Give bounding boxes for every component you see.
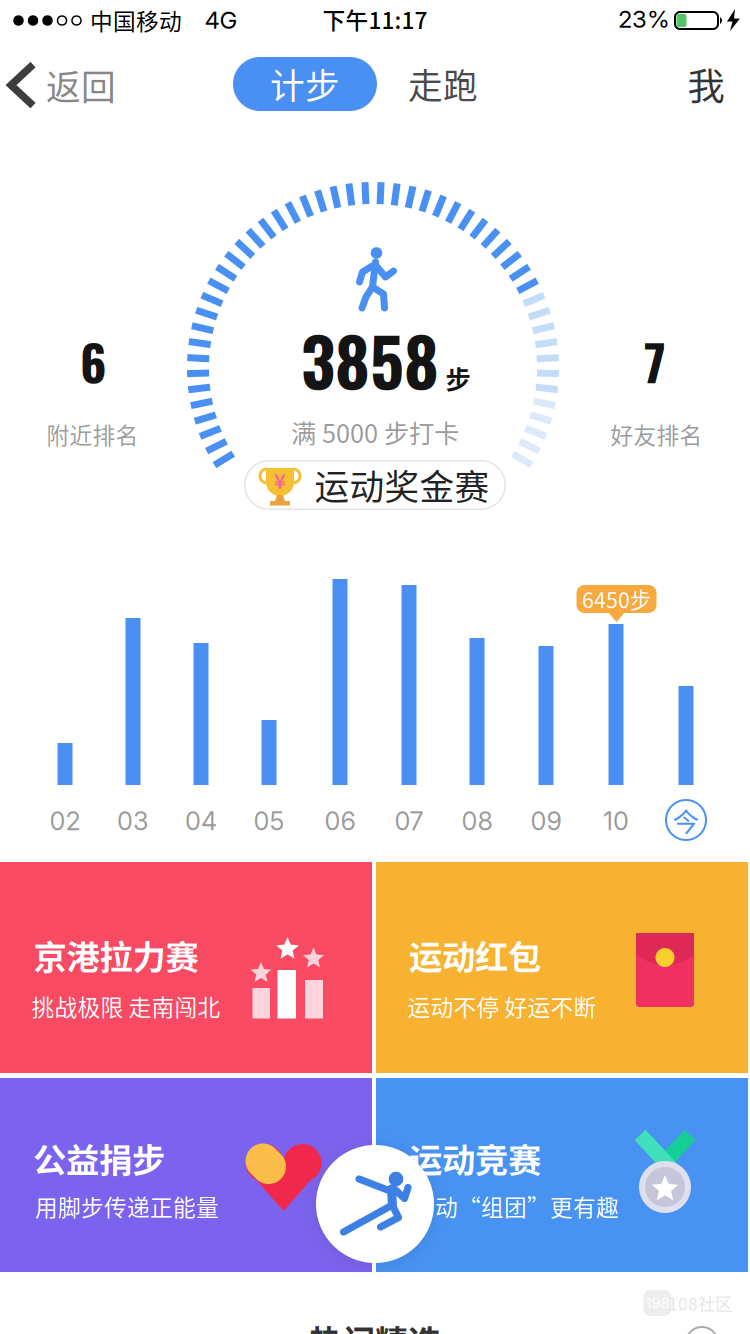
staticText: 中国移动: [90, 4, 182, 36]
staticText: 6450步: [582, 584, 651, 614]
staticText: 好友排名: [610, 418, 702, 450]
button[interactable]: 运动竞赛: [376, 1078, 748, 1272]
button[interactable]: 走跑: [408, 59, 478, 109]
staticText: 我: [687, 57, 724, 111]
staticText: 03: [117, 806, 149, 836]
staticText: 公益捐步: [33, 1134, 165, 1182]
staticText: 下午11:17: [322, 3, 427, 35]
staticText: 动“组团”更有趣: [435, 1190, 619, 1222]
button[interactable]: 返回: [6, 60, 116, 110]
staticText: ¥: [274, 465, 286, 494]
staticText: 计步: [270, 59, 340, 109]
staticText: 04: [185, 806, 217, 836]
staticText: 附近排名: [46, 418, 138, 450]
staticText: 06: [324, 806, 355, 836]
staticText: 热门精选: [309, 1316, 441, 1334]
button[interactable]: 我: [687, 57, 724, 111]
staticText: 7: [644, 324, 666, 397]
staticText: 02: [49, 806, 80, 836]
staticText: 3858: [301, 310, 439, 409]
staticText: 108社区: [668, 1290, 732, 1316]
button[interactable]: 开始运动: [316, 1145, 434, 1263]
button[interactable]: 今: [665, 799, 707, 841]
staticText: 23%: [618, 4, 670, 33]
staticText: 今: [672, 801, 699, 839]
staticText: 返回: [46, 60, 116, 110]
staticText: 运动奖金赛: [314, 460, 489, 510]
staticText: 挑战极限 走南闯北: [31, 990, 220, 1022]
staticText: 满 5000 步打卡: [291, 414, 459, 450]
staticText: 6: [80, 324, 107, 397]
staticText: 07: [394, 806, 423, 836]
button[interactable]: 京港拉力赛: [0, 862, 372, 1073]
staticText: 走跑: [408, 59, 478, 109]
staticText: 198: [645, 1294, 669, 1312]
staticText: 4G: [204, 5, 237, 34]
staticText: 运动竞赛: [409, 1134, 541, 1182]
staticText: 运动不停 好运不断: [407, 990, 596, 1022]
button[interactable]: 计步: [233, 57, 377, 111]
button[interactable]: 公益捐步: [0, 1078, 372, 1272]
button[interactable]: 运动红包: [376, 862, 748, 1073]
staticText: 运动红包: [409, 931, 541, 979]
staticText: 步: [445, 360, 470, 396]
staticText: 09: [530, 806, 561, 836]
staticText: 05: [253, 806, 284, 836]
staticText: 08: [461, 806, 492, 836]
staticText: 京港拉力赛: [33, 931, 198, 979]
staticText: 10: [603, 806, 629, 836]
staticText: 用脚步传递正能量: [35, 1190, 219, 1222]
button[interactable]: ¥: [244, 460, 506, 510]
